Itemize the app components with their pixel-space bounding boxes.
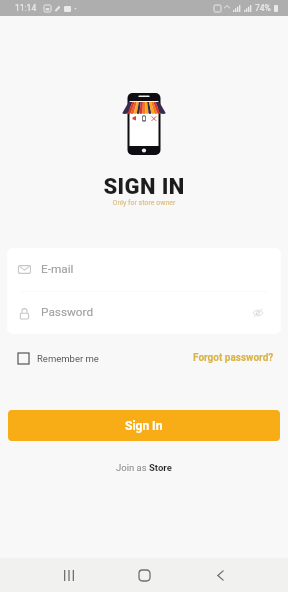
staticText: Sign In <box>125 419 163 433</box>
staticText: Forgot password? <box>193 352 274 364</box>
staticText: Join as <box>116 462 149 473</box>
button[interactable]: Recents <box>47 558 91 592</box>
button[interactable]: E-mail <box>7 248 281 291</box>
button[interactable]: Show password <box>249 304 267 322</box>
button[interactable]: Password <box>7 292 281 334</box>
staticText: Store <box>149 462 172 473</box>
button[interactable]: Back <box>198 558 242 592</box>
staticText: Remember me <box>37 353 99 364</box>
staticText: Only for store owner <box>0 199 288 207</box>
staticText: 74% <box>255 3 271 13</box>
staticText: SIGN IN <box>0 174 288 200</box>
staticText: 11:14 <box>15 3 37 13</box>
staticText: E-mail <box>41 262 74 276</box>
staticText: Password <box>41 305 94 319</box>
button[interactable]: Sign In <box>8 410 280 441</box>
button[interactable]: Home <box>122 558 166 592</box>
button[interactable]: Forgot password? <box>191 350 276 366</box>
button[interactable]: Join as <box>112 458 176 477</box>
button[interactable]: Remember me <box>18 351 99 366</box>
